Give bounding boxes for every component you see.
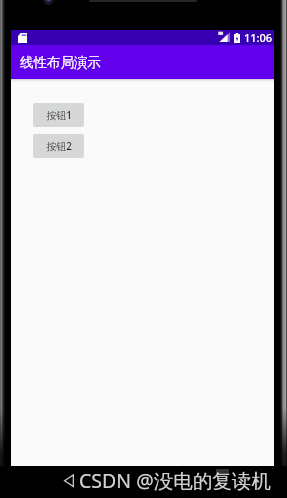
- button[interactable]: Back: [64, 473, 75, 488]
- staticText: 按钮2: [46, 139, 72, 153]
- staticText: 11:06: [244, 30, 273, 45]
- staticText: 按钮1: [46, 108, 72, 122]
- staticText: CSDN @没电的复读机: [79, 467, 271, 494]
- staticText: 线性布局演示: [20, 54, 101, 71]
- other: Signal strength: [218, 31, 230, 42]
- other: Notification: [18, 33, 27, 43]
- button[interactable]: 线性布局演示: [11, 45, 274, 79]
- button[interactable]: 按钮1: [33, 103, 84, 127]
- button[interactable]: 按钮2: [33, 134, 84, 158]
